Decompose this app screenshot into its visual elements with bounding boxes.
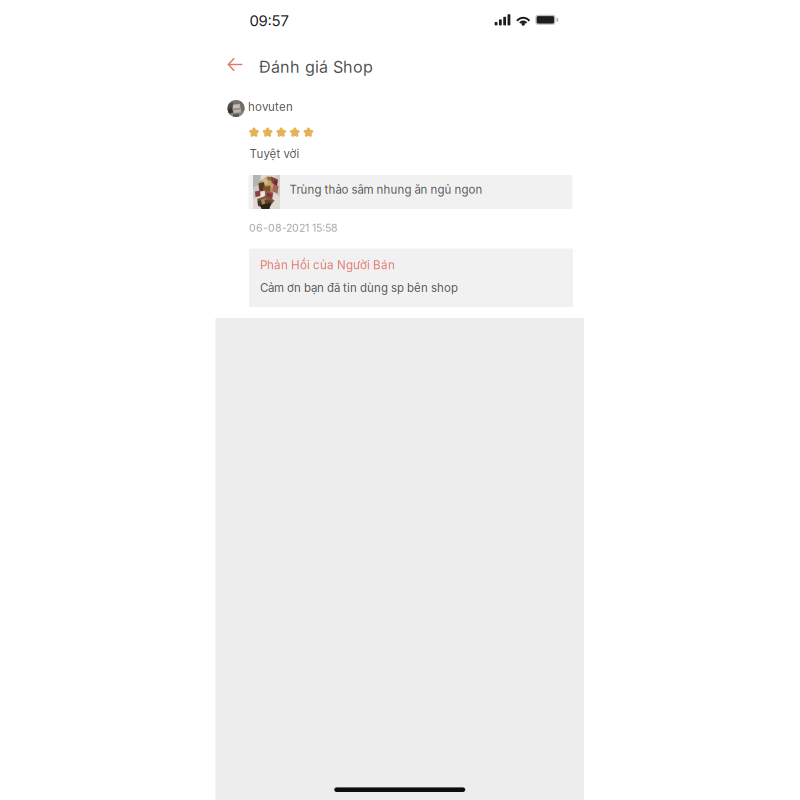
staticText: Cảm ơn bạn đã tin dùng sp bên shop xyxy=(260,281,458,295)
staticText: 09:57 xyxy=(249,12,288,30)
staticText: Phản Hồi của Người Bán xyxy=(260,258,395,272)
staticText: hovuten xyxy=(248,100,293,114)
staticText: Đánh giá Shop xyxy=(259,57,373,76)
button[interactable]: Trùng thảo sâm nhung ăn ngủ ngon xyxy=(248,175,572,209)
staticText: 06-08-2021 15:58 xyxy=(249,221,338,234)
button[interactable]: Back xyxy=(222,51,248,77)
staticText: Trùng thảo sâm nhung ăn ngủ ngon xyxy=(289,183,482,196)
staticText: Tuyệt vời xyxy=(249,147,299,161)
